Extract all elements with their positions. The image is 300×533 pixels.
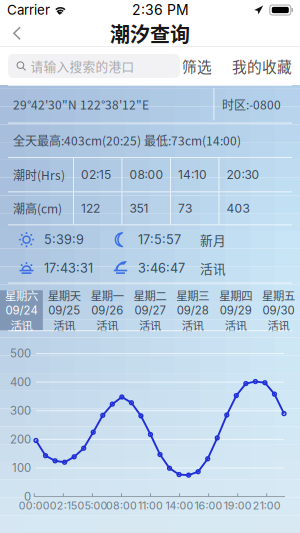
button[interactable]: 星期三 (171, 290, 214, 330)
button[interactable]: 返回 (0, 20, 34, 46)
staticText: 02:15 (81, 167, 111, 182)
staticText: 潮汐查询 (110, 19, 190, 48)
staticText: 潮高(cm) (13, 200, 62, 217)
staticText: 122 (81, 201, 100, 216)
button[interactable]: 筛选 (182, 55, 212, 77)
staticText: 403 (226, 201, 249, 216)
staticText: 00:00 (19, 499, 50, 512)
staticText: 星期一 (91, 287, 124, 303)
staticText: 29°42'30"N 122°38'12"E (13, 96, 149, 113)
staticText: 17:43:31 (44, 261, 93, 276)
staticText: 09/29 (220, 303, 252, 317)
staticText: 新月 (200, 230, 226, 249)
staticText: 我的收藏 (232, 55, 292, 77)
staticText: 500 (10, 347, 31, 360)
button[interactable]: 星期一 (86, 290, 129, 330)
staticText: 73 (178, 201, 192, 216)
staticText: 活讯 (225, 317, 247, 334)
staticText: 活讯 (268, 317, 290, 334)
staticText: 08:00 (106, 499, 137, 512)
staticText: 5:39:9 (44, 232, 84, 247)
staticText: 星期五 (262, 287, 295, 303)
staticText: 09/27 (134, 303, 165, 317)
staticText: 16:00 (195, 499, 223, 512)
staticText: 09/28 (177, 303, 209, 317)
staticText: 活讯 (139, 317, 161, 334)
staticText: 潮时(Hrs) (13, 166, 65, 183)
staticText: 星期天 (48, 287, 81, 303)
staticText: Carrier (7, 2, 50, 18)
staticText: 2:36 PM (132, 1, 189, 18)
button[interactable]: 星期四 (214, 290, 257, 330)
staticText: 100 (12, 461, 31, 475)
staticText: 星期二 (133, 287, 166, 303)
staticText: 活讯 (200, 259, 226, 277)
staticText: 09/24 (5, 303, 37, 317)
staticText: 活讯 (53, 317, 75, 334)
staticText: 09/26 (91, 303, 123, 317)
staticText: 09/30 (263, 303, 295, 317)
staticText: 351 (129, 201, 148, 216)
staticText: 请输入搜索的港口 (30, 57, 134, 75)
staticText: 活讯 (10, 317, 32, 334)
staticText: 09/25 (48, 303, 80, 317)
staticText: 星期三 (176, 287, 209, 303)
staticText: 星期六 (5, 287, 38, 303)
staticText: 活讯 (96, 317, 118, 334)
button[interactable]: 星期二 (129, 290, 171, 330)
staticText: 400 (10, 375, 31, 389)
button[interactable]: 星期五 (257, 290, 300, 330)
staticText: 300 (10, 404, 31, 418)
staticText: 3:46:47 (138, 261, 185, 276)
staticText: 200 (10, 432, 31, 446)
staticText: 17:5:57 (138, 232, 181, 247)
button[interactable]: 星期天 (43, 290, 86, 330)
staticText: 21:00 (253, 499, 281, 512)
staticText: 筛选 (182, 55, 212, 77)
staticText: 14:10 (178, 167, 207, 182)
staticText: 0 (24, 490, 31, 503)
staticText: 活讯 (182, 317, 204, 334)
staticText: 时区:-0800 (222, 96, 281, 113)
button[interactable]: 星期六 (0, 290, 43, 330)
staticText: 20:30 (226, 167, 259, 182)
staticText: 02:15 (50, 499, 77, 512)
staticText: 19:00 (224, 499, 252, 512)
button[interactable]: 我的收藏 (232, 55, 292, 77)
staticText: 星期四 (219, 287, 252, 303)
staticText: 08:00 (129, 167, 163, 182)
staticText: 11:00 (138, 499, 163, 512)
staticText: 全天最高:403cm(20:25) 最低:73cm(14:00) (13, 132, 241, 149)
staticText: 14:00 (166, 499, 194, 512)
staticText: 05:00 (77, 499, 107, 512)
